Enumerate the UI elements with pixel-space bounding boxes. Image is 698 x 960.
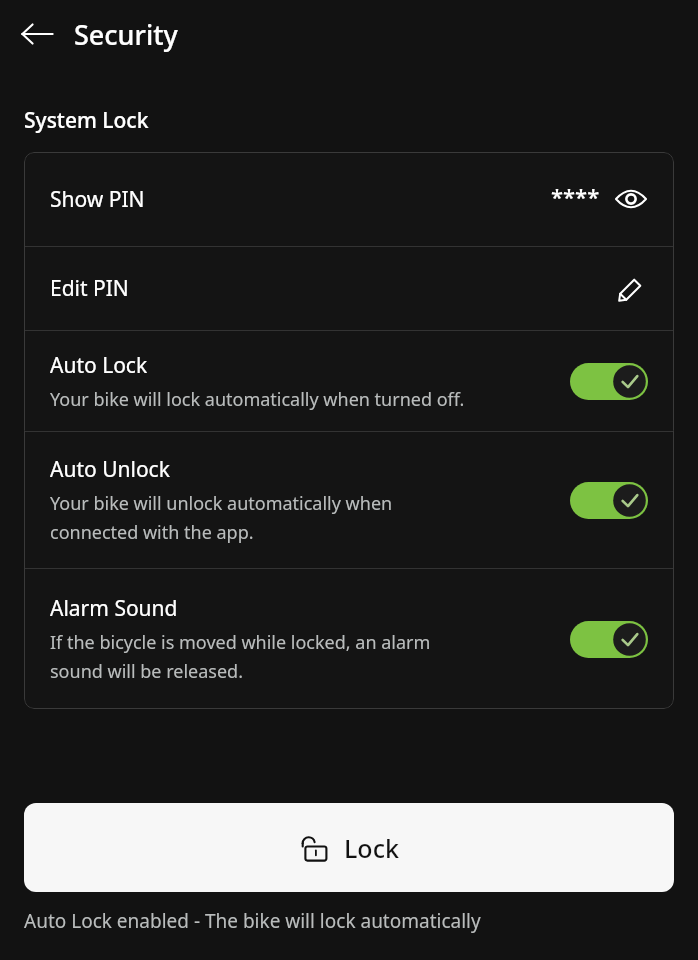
button[interactable]: Alarm Sound: [24, 569, 674, 709]
staticText: Auto Unlock: [50, 455, 170, 484]
staticText: ****: [551, 181, 600, 211]
staticText: Your bike will lock automatically when t…: [50, 387, 465, 412]
staticText: Show PIN: [50, 185, 145, 214]
staticText: Edit PIN: [50, 274, 129, 303]
other: Show PIN: [614, 182, 648, 216]
other: Edit PIN: [614, 272, 648, 306]
staticText: sound will be released.: [50, 659, 243, 684]
staticText: connected with the app.: [50, 520, 254, 545]
staticText: Lock: [344, 831, 399, 865]
staticText: System Lock: [24, 106, 149, 135]
staticText: Auto Lock enabled - The bike will lock a…: [24, 908, 481, 934]
button[interactable]: Lock: [24, 803, 674, 892]
staticText: Auto Lock: [50, 351, 148, 380]
staticText: Alarm Sound: [50, 594, 178, 623]
button[interactable]: Auto Unlock: [24, 432, 674, 568]
staticText: If the bicycle is moved while locked, an…: [50, 630, 431, 655]
button[interactable]: Edit PIN: [24, 247, 674, 330]
button[interactable]: Back: [14, 11, 60, 57]
staticText: Security: [74, 16, 178, 53]
button[interactable]: Show PIN: [24, 152, 674, 246]
staticText: Your bike will unlock automatically when: [50, 491, 393, 516]
button[interactable]: Auto Unlock toggle, on: [570, 482, 648, 519]
button[interactable]: Alarm Sound toggle, on: [570, 621, 648, 658]
button[interactable]: Auto Lock: [24, 331, 674, 431]
button[interactable]: Auto Lock toggle, on: [570, 363, 648, 400]
